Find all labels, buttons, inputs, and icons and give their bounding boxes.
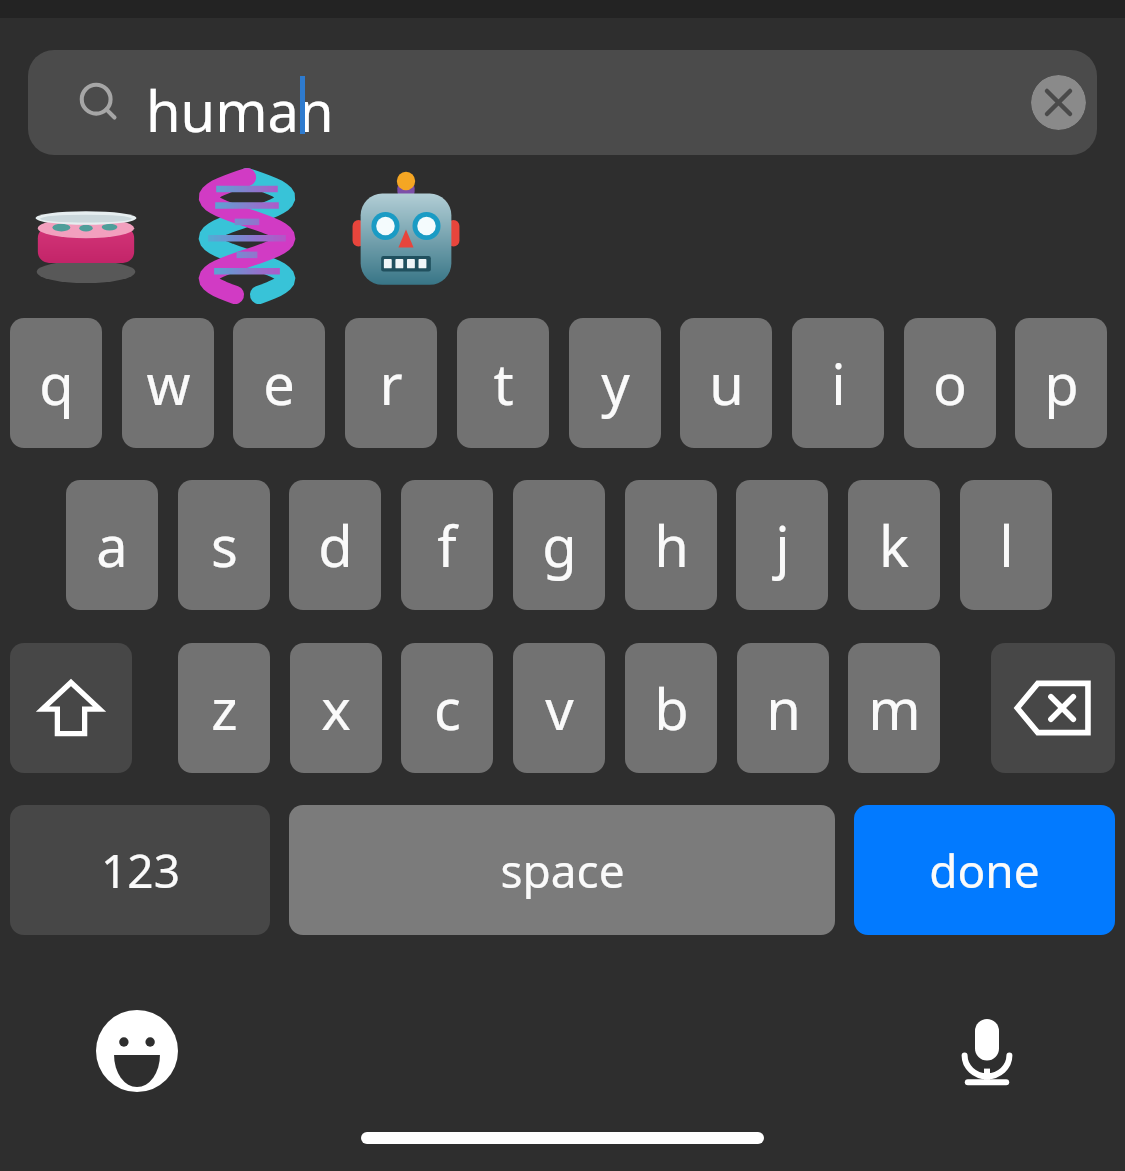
staticText: l <box>999 507 1014 583</box>
button[interactable]: p <box>1015 318 1107 448</box>
staticText: w <box>146 345 191 421</box>
button[interactable]: z <box>178 643 270 773</box>
staticText: u <box>709 345 744 421</box>
button[interactable]: k <box>848 480 940 610</box>
staticText: b <box>654 670 689 746</box>
button[interactable]: i <box>792 318 884 448</box>
staticText: d <box>318 507 353 583</box>
staticText: s <box>211 507 238 583</box>
staticText: space <box>500 839 625 902</box>
button[interactable]: v <box>513 643 605 773</box>
staticText: h <box>654 507 689 583</box>
button[interactable]: r <box>345 318 437 448</box>
button[interactable]: space <box>289 805 835 935</box>
staticText: o <box>933 345 967 421</box>
button[interactable]: c <box>401 643 493 773</box>
button[interactable]: Petri dish emoji <box>30 180 142 292</box>
button[interactable]: d <box>289 480 381 610</box>
staticText: r <box>379 345 403 421</box>
button[interactable]: DNA emoji <box>188 172 306 300</box>
button[interactable]: human <box>28 50 1097 155</box>
button[interactable]: y <box>569 318 661 448</box>
staticText: g <box>542 507 577 583</box>
button[interactable]: o <box>904 318 996 448</box>
staticText: t <box>493 345 514 421</box>
staticText: 123 <box>101 839 180 902</box>
staticText: i <box>831 345 846 421</box>
button[interactable]: n <box>737 643 829 773</box>
button[interactable]: a <box>66 480 158 610</box>
staticText: k <box>879 507 909 583</box>
staticText: done <box>929 839 1040 902</box>
staticText: q <box>39 345 74 421</box>
button[interactable]: m <box>848 643 940 773</box>
button[interactable]: g <box>513 480 605 610</box>
staticText: p <box>1044 345 1079 421</box>
button[interactable]: Robot emoji <box>352 172 460 292</box>
button[interactable]: 123 <box>10 805 270 935</box>
staticText: x <box>321 670 351 746</box>
button[interactable]: l <box>960 480 1052 610</box>
staticText: v <box>545 670 574 746</box>
staticText: human <box>146 72 334 148</box>
button[interactable]: t <box>457 318 549 448</box>
button[interactable]: j <box>736 480 828 610</box>
button[interactable]: Shift <box>10 643 132 773</box>
staticText: f <box>437 507 457 583</box>
button[interactable]: Backspace <box>991 643 1115 773</box>
staticText: a <box>96 507 128 583</box>
staticText: m <box>868 670 921 746</box>
button[interactable]: e <box>233 318 325 448</box>
button[interactable]: f <box>401 480 493 610</box>
button[interactable]: Emoji keyboard <box>92 1006 182 1096</box>
staticText: e <box>263 345 295 421</box>
staticText: y <box>601 345 630 421</box>
button[interactable]: s <box>178 480 270 610</box>
button[interactable]: h <box>625 480 717 610</box>
button[interactable]: u <box>680 318 772 448</box>
staticText: c <box>434 670 461 746</box>
staticText: n <box>766 670 801 746</box>
button[interactable]: w <box>122 318 214 448</box>
button[interactable]: q <box>10 318 102 448</box>
button[interactable]: done <box>854 805 1115 935</box>
button[interactable]: x <box>290 643 382 773</box>
button[interactable]: b <box>625 643 717 773</box>
staticText: z <box>211 670 238 746</box>
button[interactable]: Clear search <box>1031 75 1086 130</box>
staticText: j <box>775 507 790 583</box>
button[interactable]: Dictation <box>942 1006 1032 1096</box>
